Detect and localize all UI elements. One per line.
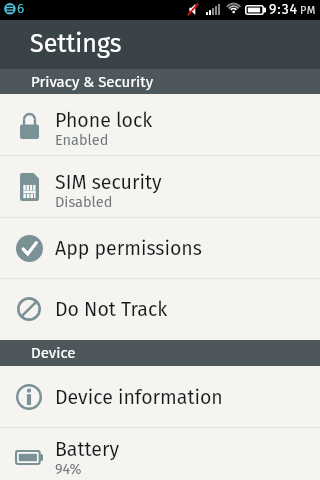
- staticText: Device information: [55, 386, 223, 409]
- button[interactable]: SIM security: [0, 156, 320, 218]
- button[interactable]: Device information: [0, 366, 320, 428]
- staticText: PM: [300, 4, 316, 17]
- staticText: Battery: [55, 438, 119, 461]
- staticText: App permissions: [55, 237, 202, 260]
- staticText: Privacy & Security: [31, 73, 154, 91]
- staticText: Settings: [30, 29, 122, 59]
- button[interactable]: App permissions: [0, 218, 320, 279]
- staticText: 6: [17, 0, 25, 16]
- staticText: 9:34: [269, 1, 298, 18]
- button[interactable]: Do Not Track: [0, 279, 320, 340]
- staticText: Phone lock: [55, 109, 153, 132]
- staticText: 94%: [55, 460, 82, 477]
- staticText: Enabled: [55, 131, 109, 148]
- staticText: Disabled: [55, 193, 113, 210]
- button[interactable]: Phone lock: [0, 94, 320, 156]
- staticText: SIM security: [55, 171, 162, 194]
- staticText: Do Not Track: [55, 298, 168, 321]
- staticText: Device: [31, 344, 76, 362]
- button[interactable]: Battery: [0, 428, 320, 480]
